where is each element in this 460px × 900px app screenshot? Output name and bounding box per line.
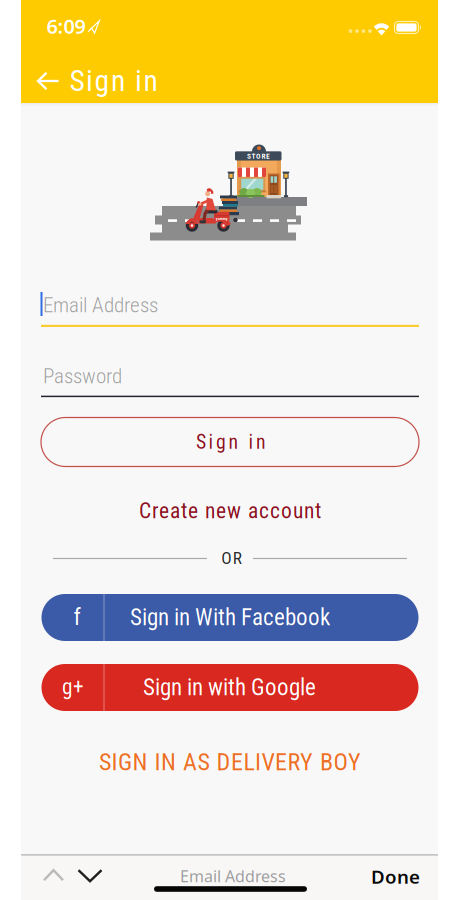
button[interactable]: Next field <box>76 868 104 883</box>
staticText: SIGN IN AS DELIVERY BOY <box>99 748 361 776</box>
staticText: Sign in with Google <box>143 674 316 701</box>
staticText: Password <box>43 364 122 388</box>
staticText: f <box>73 603 80 631</box>
staticText: Sign in <box>69 64 157 98</box>
staticText: Done <box>371 864 420 889</box>
staticText: Create new account <box>139 498 321 524</box>
staticText: Email Address <box>43 293 158 317</box>
button[interactable]: Sign in <box>41 417 419 466</box>
staticText: g+ <box>62 674 84 699</box>
staticText: 6:09 <box>46 13 85 39</box>
button[interactable]: f <box>41 594 418 641</box>
button[interactable]: Email Address <box>170 857 296 895</box>
button[interactable]: Create new account <box>131 492 329 530</box>
button[interactable]: Password <box>31 348 427 404</box>
staticText: yummy <box>216 216 228 221</box>
button[interactable]: Email Address <box>31 277 427 333</box>
staticText: STORE <box>247 152 270 160</box>
staticText: Sign in With Facebook <box>130 604 330 631</box>
button[interactable]: SIGN IN AS DELIVERY BOY <box>93 742 367 782</box>
button[interactable]: Back <box>27 60 69 102</box>
staticText: Email Address <box>180 865 286 887</box>
staticText: Sign in <box>196 430 266 453</box>
button[interactable]: Previous field <box>41 868 66 883</box>
button[interactable]: Done <box>363 856 428 897</box>
button[interactable]: g+ <box>41 664 418 711</box>
staticText: OR <box>221 548 242 568</box>
